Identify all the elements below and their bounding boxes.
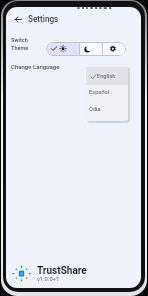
button[interactable] bbox=[80, 42, 102, 56]
staticText: Switch bbox=[11, 37, 28, 44]
staticText: Change Language bbox=[11, 63, 60, 70]
staticText: Odia bbox=[89, 106, 101, 113]
staticText: TrustShare bbox=[37, 265, 87, 277]
staticText: Theme bbox=[11, 45, 29, 52]
staticText: v1.0.0+1 bbox=[37, 276, 60, 283]
staticText: Settings bbox=[28, 14, 59, 24]
staticText: English bbox=[97, 73, 116, 80]
button[interactable]: Español bbox=[86, 84, 128, 101]
button[interactable]: English bbox=[86, 67, 128, 85]
staticText: Español bbox=[89, 89, 110, 96]
button[interactable] bbox=[103, 42, 126, 56]
button[interactable]: Change Language bbox=[10, 61, 72, 71]
button[interactable] bbox=[46, 42, 79, 56]
button[interactable]: Odia bbox=[86, 101, 128, 118]
button[interactable] bbox=[12, 14, 24, 26]
